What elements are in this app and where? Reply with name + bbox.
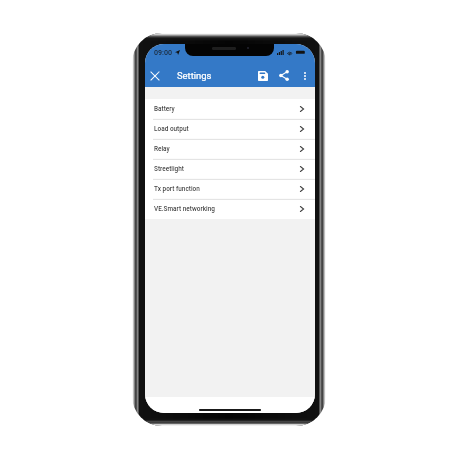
- button[interactable]: Close: [147, 68, 162, 83]
- button[interactable]: Load output: [145, 119, 315, 139]
- button[interactable]: Streetlight: [145, 159, 315, 179]
- button[interactable]: Tx port function: [145, 179, 315, 199]
- staticText: Load output: [154, 125, 189, 133]
- staticText: Settings: [177, 70, 212, 81]
- button[interactable]: More options: [298, 68, 312, 82]
- button[interactable]: Share: [276, 68, 291, 83]
- button[interactable]: Relay: [145, 139, 315, 159]
- staticText: Streetlight: [154, 165, 184, 173]
- button[interactable]: Save: [255, 68, 270, 83]
- staticText: VE.Smart networking: [154, 205, 215, 213]
- button[interactable]: VE.Smart networking: [145, 199, 315, 219]
- staticText: Battery: [154, 105, 175, 113]
- button[interactable]: Battery: [145, 99, 315, 119]
- staticText: Relay: [154, 145, 170, 153]
- staticText: Tx port function: [154, 185, 200, 193]
- staticText: 09:00: [154, 48, 173, 56]
